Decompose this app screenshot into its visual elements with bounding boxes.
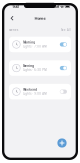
- staticText: Lights · 6:30 PM: [23, 68, 46, 72]
- button[interactable]: See All: [61, 28, 71, 32]
- staticText: Home: [34, 15, 45, 21]
- staticText: Scenes: [9, 28, 18, 32]
- button[interactable]: Back: [9, 14, 15, 22]
- button[interactable]: Weekend: [9, 84, 71, 99]
- staticText: 9:41: [12, 4, 19, 9]
- staticText: Lights · 9:00 AM: [23, 92, 46, 95]
- button[interactable]: Evening: [9, 60, 71, 76]
- staticText: See All: [61, 28, 71, 32]
- staticText: Lights · 7:00 AM: [23, 45, 46, 48]
- staticText: Evening: [23, 64, 34, 68]
- staticText: Morning: [23, 41, 35, 44]
- button[interactable]: Add scene: [57, 138, 67, 148]
- staticText: Weekend: [23, 88, 37, 91]
- button[interactable]: Morning: [9, 37, 71, 52]
